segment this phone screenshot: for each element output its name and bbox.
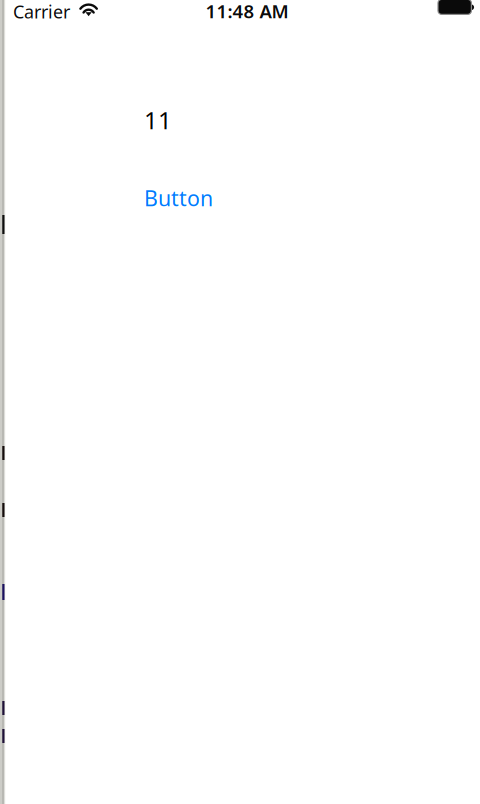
- staticText: 11:48 AM: [205, 0, 288, 24]
- staticText: Button: [144, 184, 213, 212]
- staticText: 11: [144, 104, 172, 136]
- button[interactable]: Button: [144, 184, 213, 212]
- staticText: Carrier: [13, 0, 70, 24]
